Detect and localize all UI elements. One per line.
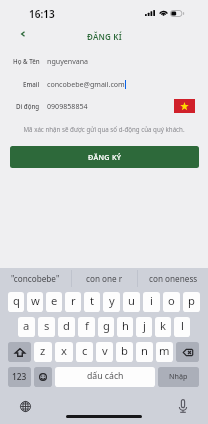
- staticText: b: [121, 343, 128, 358]
- staticText: Mã xác nhận sẽ được gửi qua số d-động củ…: [0, 125, 208, 133]
- staticText: z: [40, 343, 46, 358]
- button[interactable]: con one r: [70, 268, 139, 289]
- staticText: Họ & Tên: [13, 57, 40, 65]
- staticText: ĐĂNG KÝ: [88, 152, 122, 162]
- staticText: u: [128, 293, 135, 308]
- staticText: ĐĂNG KÍ: [87, 31, 122, 42]
- staticText: j: [143, 318, 146, 333]
- staticText: r: [71, 293, 76, 308]
- button[interactable]: r: [65, 292, 81, 312]
- button[interactable]: z: [34, 342, 52, 362]
- staticText: s: [44, 318, 50, 333]
- staticText: f: [85, 318, 89, 333]
- staticText: k: [160, 318, 166, 333]
- button[interactable]: ĐĂNG KÝ: [10, 146, 199, 168]
- staticText: y: [109, 293, 115, 308]
- button[interactable]: Emoji: [34, 367, 52, 387]
- staticText: Di động: [16, 102, 40, 110]
- button[interactable]: Email: [0, 73, 208, 95]
- button[interactable]: Nhập: [158, 367, 199, 387]
- staticText: w: [31, 293, 40, 308]
- button[interactable]: q: [8, 292, 24, 312]
- staticText: concobebe@gmail.com: [47, 79, 125, 89]
- button[interactable]: Voice input: [176, 399, 190, 413]
- staticText: e: [51, 293, 58, 308]
- button[interactable]: Họ & Tên: [0, 50, 208, 72]
- button[interactable]: w: [27, 292, 43, 312]
- button[interactable]: dấu cách: [55, 367, 155, 387]
- button[interactable]: y: [103, 292, 120, 312]
- button[interactable]: con oneness: [139, 268, 208, 289]
- staticText: i: [150, 293, 153, 308]
- staticText: x: [61, 343, 67, 358]
- button[interactable]: f: [78, 317, 95, 337]
- button[interactable]: Di động: [0, 95, 208, 117]
- staticText: 16:13: [29, 7, 55, 21]
- staticText: 0909858854: [47, 101, 88, 111]
- staticText: d: [63, 318, 70, 333]
- staticText: n: [141, 343, 148, 358]
- button[interactable]: a: [18, 317, 35, 337]
- button[interactable]: e: [46, 292, 62, 312]
- staticText: l: [181, 318, 184, 333]
- button[interactable]: d: [58, 317, 75, 337]
- button[interactable]: s: [38, 317, 55, 337]
- staticText: q: [13, 293, 20, 308]
- button[interactable]: Back: [12, 25, 34, 43]
- button[interactable]: j: [136, 317, 152, 337]
- button[interactable]: l: [174, 317, 190, 337]
- staticText: dấu cách: [87, 370, 124, 382]
- button[interactable]: p: [183, 292, 200, 312]
- staticText: g: [103, 318, 110, 333]
- staticText: con one r: [86, 273, 123, 284]
- button[interactable]: x: [55, 342, 73, 362]
- staticText: h: [122, 318, 129, 333]
- button[interactable]: Backspace: [176, 342, 199, 362]
- staticText: m: [159, 343, 170, 358]
- staticText: a: [23, 318, 30, 333]
- button[interactable]: u: [123, 292, 140, 312]
- button[interactable]: m: [156, 342, 173, 362]
- button[interactable]: c: [76, 342, 93, 362]
- staticText: c: [82, 343, 88, 358]
- button[interactable]: h: [117, 317, 133, 337]
- button[interactable]: g: [98, 317, 114, 337]
- staticText: 123: [12, 371, 27, 382]
- button[interactable]: n: [136, 342, 153, 362]
- staticText: p: [188, 293, 195, 308]
- staticText: Email: [23, 80, 40, 88]
- button[interactable]: k: [155, 317, 171, 337]
- button[interactable]: Shift: [8, 342, 31, 362]
- button[interactable]: v: [96, 342, 113, 362]
- button[interactable]: 123: [8, 367, 31, 387]
- staticText: "concobebe": [11, 273, 60, 284]
- button[interactable]: b: [116, 342, 133, 362]
- button[interactable]: o: [163, 292, 180, 312]
- staticText: Nhập: [169, 371, 188, 381]
- button[interactable]: i: [143, 292, 160, 312]
- staticText: nguyenvana: [47, 56, 89, 66]
- button[interactable]: Change keyboard: [18, 399, 32, 413]
- button[interactable]: "concobebe": [0, 268, 70, 289]
- button[interactable]: t: [84, 292, 100, 312]
- staticText: v: [102, 343, 108, 358]
- staticText: o: [168, 293, 175, 308]
- staticText: con oneness: [149, 273, 198, 284]
- staticText: t: [90, 293, 95, 308]
